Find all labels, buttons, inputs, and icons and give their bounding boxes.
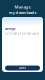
staticText: Done [18,66,26,70]
staticText: Manage [14,4,30,9]
staticText: 12.4 GB of 64 GB used [5,32,39,35]
staticText: Storage [5,27,16,30]
staticText: my downloads [8,10,36,15]
button[interactable]: Done [5,65,40,70]
